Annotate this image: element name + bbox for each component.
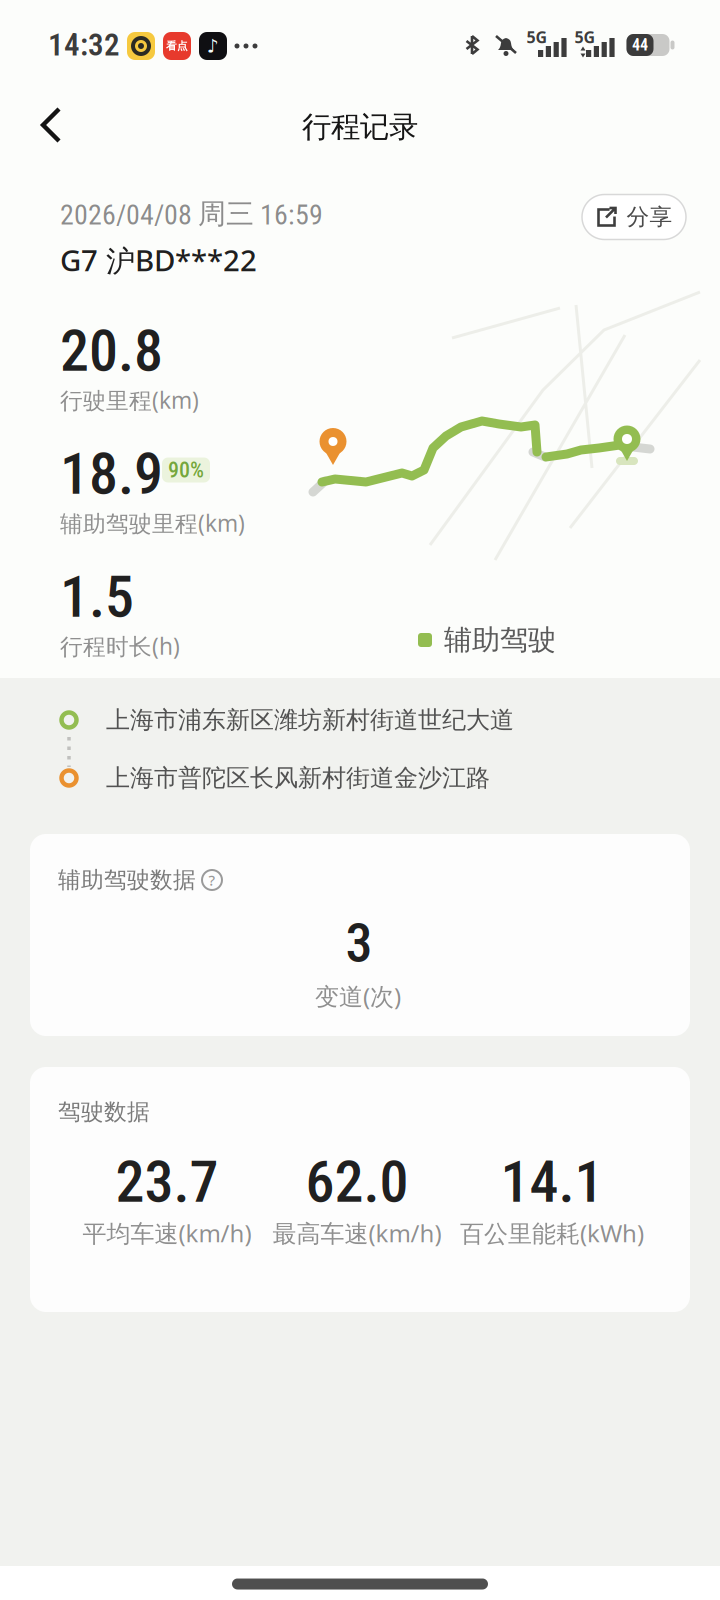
staticText: 18.9 [60,440,163,508]
staticText: 平均车速(km/h) [82,1217,251,1249]
staticText: 分享 [626,203,672,231]
staticText: 23.7 [115,1148,218,1216]
staticText: 驾驶数据 [58,1098,150,1126]
staticText: 14.1 [500,1148,603,1216]
staticText: 行程时长(h) [60,631,180,661]
staticText: G7 沪BD***22 [60,240,257,279]
staticText: 5G [526,26,547,48]
staticText: 百公里能耗(kWh) [460,1217,644,1249]
staticText: 3 [345,911,372,975]
staticText: 最高车速(km/h) [272,1217,441,1249]
staticText: 看点 [166,39,188,52]
staticText: ? [208,870,215,890]
staticText: 变道(次) [315,980,401,1012]
button[interactable]: 分享 [582,194,686,239]
staticText: 62.0 [305,1148,408,1216]
staticText: 上海市普陀区长风新村街道金沙江路 [106,763,490,793]
staticText: 1.5 [60,563,134,631]
staticText: 辅助驾驶 [444,623,556,657]
staticText: 20.8 [60,317,163,385]
staticText: 上海市浦东新区潍坊新村街道世纪大道 [106,705,514,735]
staticText: 行驶里程(km) [60,385,199,415]
staticText: 辅助驾驶里程(km) [60,508,245,538]
staticText: 90% [168,457,204,483]
staticText: 14:32 [48,27,120,63]
staticText: 行程记录 [302,109,418,145]
button[interactable]: Back [29,95,77,155]
staticText: 辅助驾驶数据 [58,866,196,894]
staticText: 5G [574,26,595,48]
staticText: 44 [632,36,648,54]
staticText: ♪ [207,35,219,57]
staticText: 2026/04/08 周三 16:59 [60,196,323,232]
button[interactable]: 辅助驾驶数据说明 [197,865,227,895]
